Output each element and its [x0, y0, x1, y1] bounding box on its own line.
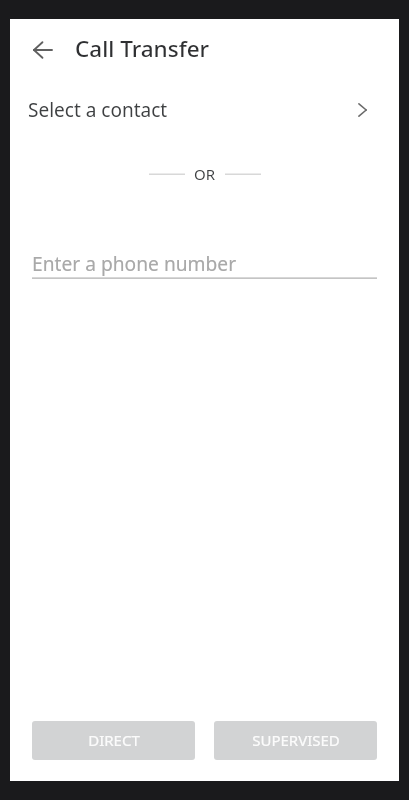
staticText: Call Transfer: [75, 33, 210, 64]
staticText: Enter a phone number: [32, 250, 237, 276]
staticText: Select a contact: [28, 97, 168, 123]
button[interactable]: SUPERVISED: [214, 721, 377, 760]
button[interactable]: DIRECT: [32, 721, 195, 760]
staticText: OR: [194, 164, 216, 184]
button[interactable]: Select a contact: [10, 86, 399, 134]
staticText: SUPERVISED: [252, 730, 340, 750]
staticText: DIRECT: [88, 730, 140, 750]
button[interactable]: Back: [23, 30, 63, 70]
